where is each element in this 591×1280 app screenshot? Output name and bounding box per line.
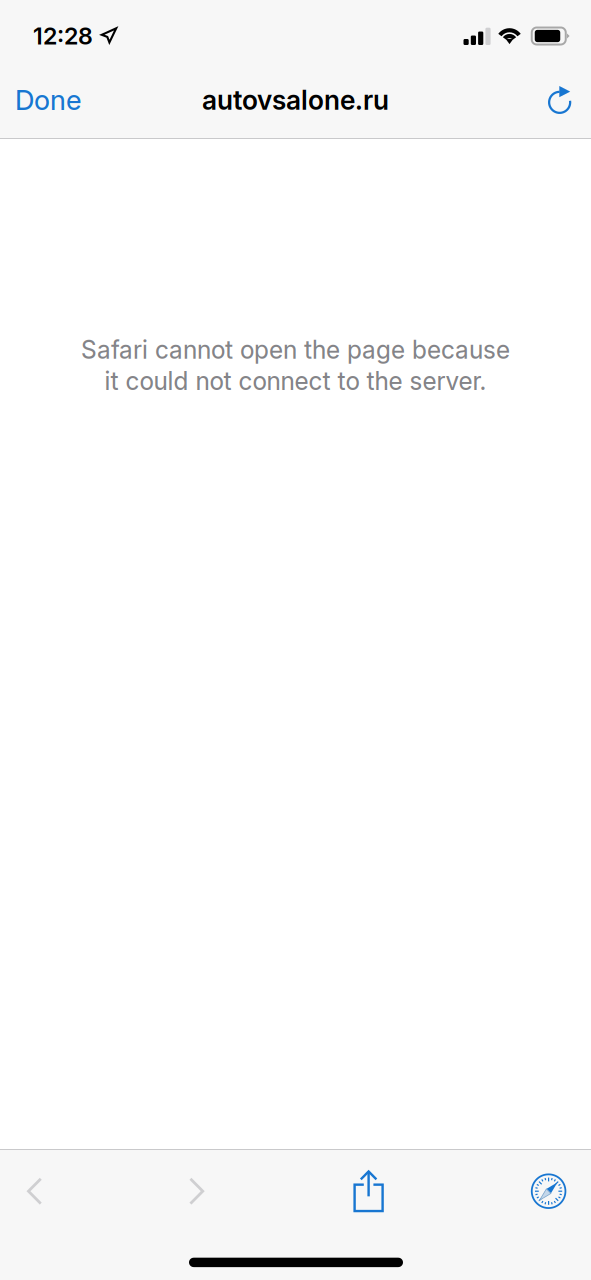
- button[interactable]: Back: [1, 1151, 69, 1231]
- staticText: Safari cannot open the page because: [81, 335, 510, 365]
- staticText: Done: [15, 83, 82, 117]
- button[interactable]: Done: [0, 69, 96, 131]
- button[interactable]: Open in Safari: [515, 1151, 583, 1231]
- staticText: autovsalone.ru: [202, 84, 389, 116]
- staticText: it could not connect to the server.: [104, 366, 486, 396]
- button[interactable]: Forward: [163, 1151, 231, 1231]
- button[interactable]: Reload: [534, 69, 591, 131]
- button[interactable]: Share: [335, 1151, 403, 1231]
- staticText: 12:28: [33, 22, 93, 50]
